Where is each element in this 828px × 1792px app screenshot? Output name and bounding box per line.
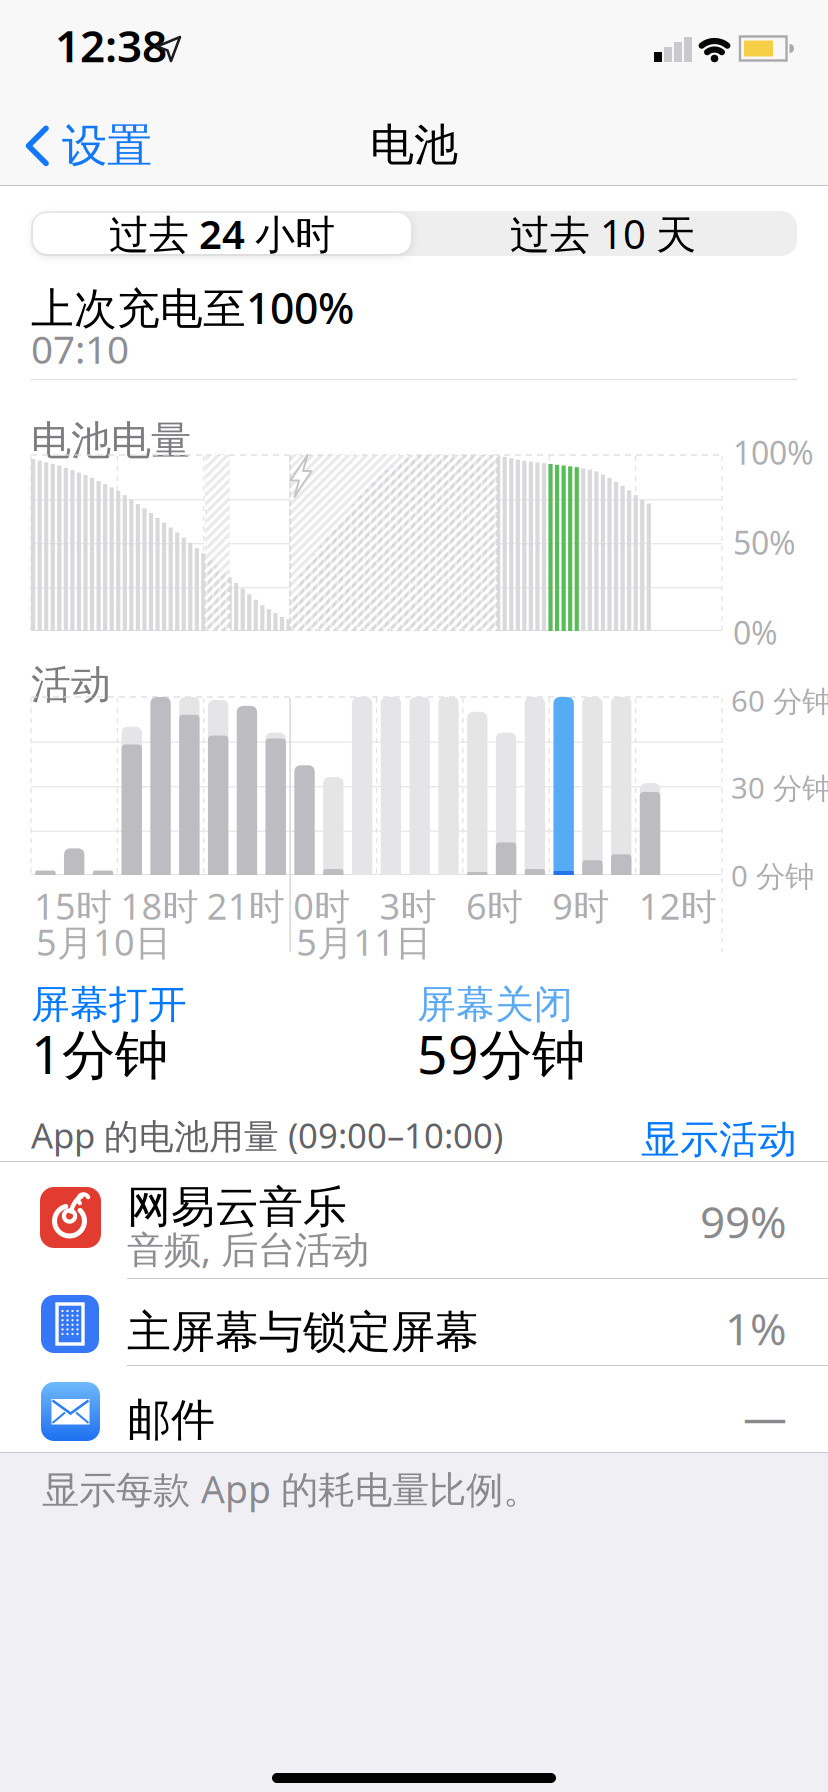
staticText: 99% bbox=[700, 1192, 787, 1250]
staticText: 屏幕打开 bbox=[31, 981, 187, 1028]
staticText: 屏幕关闭 bbox=[417, 981, 573, 1028]
button[interactable]: 过去 10 天 bbox=[413, 211, 793, 256]
button[interactable]: 过去 24 小时 bbox=[33, 213, 411, 254]
staticText: 9时 bbox=[552, 882, 609, 930]
staticText: 59分钟 bbox=[417, 1018, 585, 1089]
staticText: 邮件 bbox=[127, 1393, 215, 1447]
button[interactable]: 邮件 bbox=[0, 1366, 828, 1452]
staticText: 07:10 bbox=[31, 323, 129, 374]
staticText: 活动 bbox=[31, 660, 111, 709]
staticText: 主屏幕与锁定屏幕 bbox=[127, 1305, 479, 1359]
staticText: 过去 24 小时 bbox=[109, 207, 335, 260]
staticText: 1% bbox=[725, 1299, 787, 1357]
staticText: 显示每款 App 的耗电量比例。 bbox=[42, 1464, 540, 1514]
staticText: 音频, 后台活动 bbox=[127, 1224, 369, 1274]
staticText: 3时 bbox=[379, 882, 436, 930]
staticText: — bbox=[743, 1387, 787, 1445]
staticText: 5月10日 bbox=[36, 918, 171, 966]
staticText: 上次充电至100% bbox=[31, 279, 354, 336]
staticText: 0 分钟 bbox=[731, 856, 814, 895]
staticText: 1分钟 bbox=[31, 1018, 168, 1089]
staticText: 5月11日 bbox=[296, 918, 431, 966]
staticText: 12时 bbox=[639, 882, 717, 930]
staticText: 50% bbox=[733, 521, 796, 563]
staticText: 显示活动 bbox=[641, 1116, 797, 1163]
staticText: 12:38 bbox=[55, 16, 167, 74]
staticText: 0% bbox=[733, 611, 778, 653]
staticText: 电池电量 bbox=[31, 416, 191, 465]
button[interactable]: 网易云音乐 bbox=[0, 1162, 828, 1278]
staticText: 过去 10 天 bbox=[510, 207, 696, 260]
staticText: 网易云音乐 bbox=[127, 1180, 347, 1234]
staticText: 15时 bbox=[34, 882, 112, 930]
staticText: 30 分钟 bbox=[731, 768, 828, 807]
staticText: 18时 bbox=[120, 882, 198, 930]
staticText: App 的电池用量 (09:00–10:00) bbox=[31, 1112, 503, 1158]
staticText: 100% bbox=[733, 431, 814, 473]
button[interactable]: 显示活动 bbox=[641, 1116, 797, 1163]
button[interactable]: 设置 bbox=[26, 118, 152, 174]
staticText: 电池 bbox=[370, 118, 458, 172]
staticText: 60 分钟 bbox=[731, 681, 828, 720]
staticText: 0时 bbox=[293, 882, 350, 930]
staticText: 21时 bbox=[207, 882, 285, 930]
staticText: 设置 bbox=[62, 118, 152, 174]
button[interactable]: 主屏幕与锁定屏幕 bbox=[0, 1279, 828, 1365]
staticText: 6时 bbox=[466, 882, 523, 930]
